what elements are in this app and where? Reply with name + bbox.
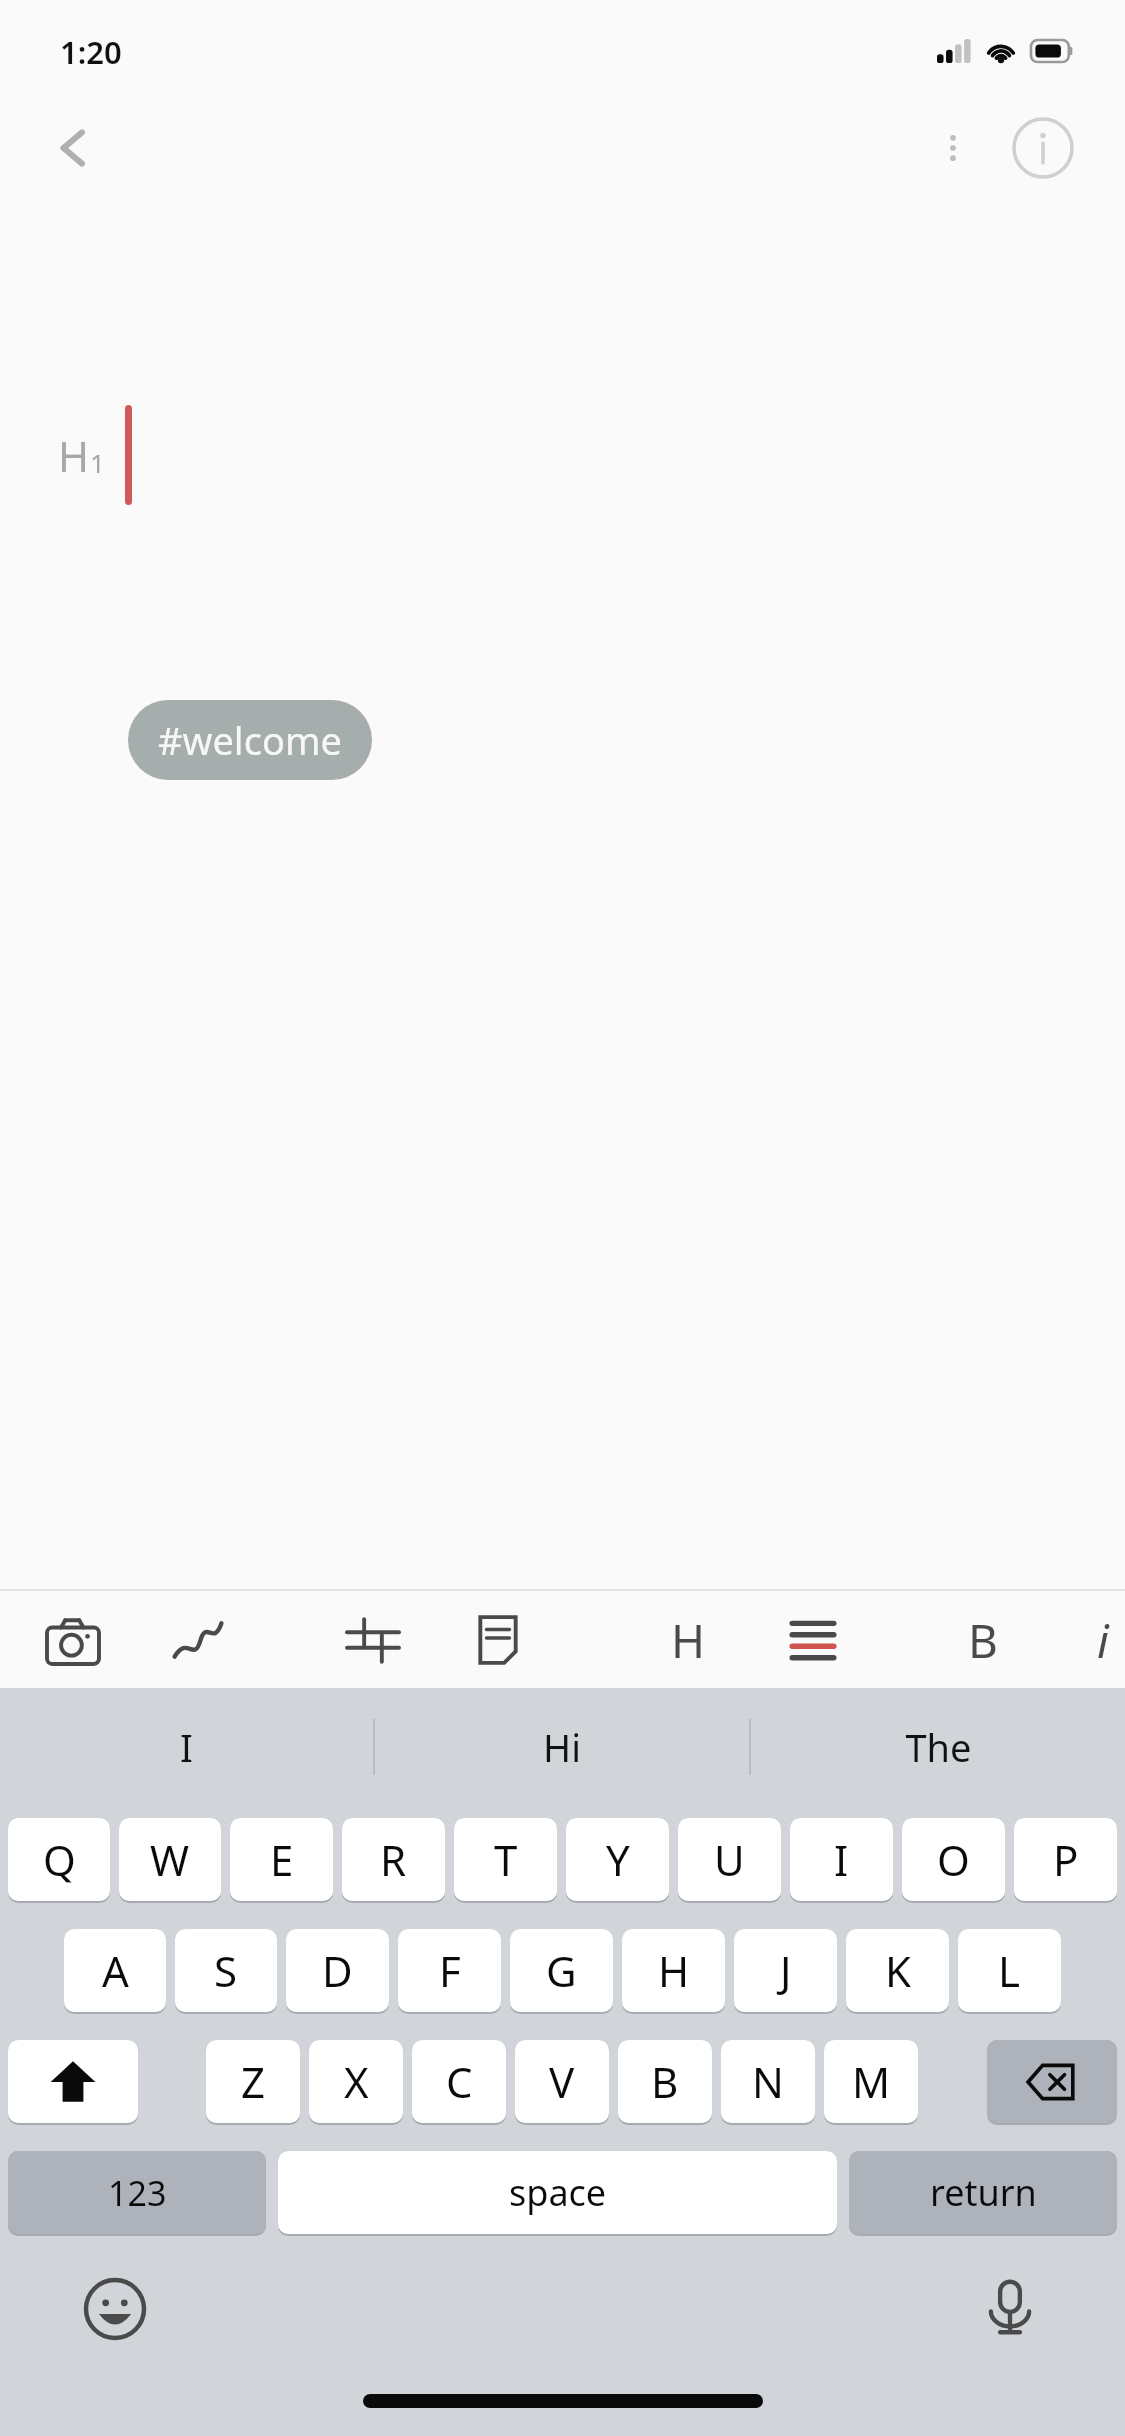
- staticText: X: [344, 2053, 369, 2110]
- button[interactable]: M: [824, 2040, 918, 2123]
- staticText: O: [937, 1831, 970, 1888]
- button[interactable]: Note: [455, 1597, 541, 1683]
- button[interactable]: Q: [8, 1818, 110, 1901]
- button[interactable]: L: [958, 1929, 1061, 2012]
- staticText: E: [270, 1831, 294, 1888]
- staticText: return: [930, 2168, 1037, 2217]
- staticText: R: [380, 1831, 407, 1888]
- staticText: M: [852, 2053, 891, 2110]
- button[interactable]: Settings: [330, 1597, 416, 1683]
- staticText: Hi: [543, 1721, 581, 1773]
- button[interactable]: Info: [997, 102, 1089, 194]
- button[interactable]: X: [309, 2040, 403, 2123]
- button[interactable]: Camera: [30, 1597, 116, 1683]
- button[interactable]: H: [645, 1597, 731, 1683]
- button[interactable]: i: [1080, 1597, 1125, 1683]
- button[interactable]: List: [770, 1597, 856, 1683]
- button[interactable]: Z: [206, 2040, 300, 2123]
- staticText: 1: [90, 445, 105, 480]
- button[interactable]: R: [342, 1818, 445, 1901]
- staticText: B: [651, 2053, 679, 2110]
- staticText: N: [752, 2053, 784, 2110]
- staticText: C: [446, 2053, 473, 2110]
- button[interactable]: return: [849, 2151, 1117, 2234]
- button[interactable]: I: [790, 1818, 893, 1901]
- button[interactable]: Back: [30, 100, 126, 196]
- button[interactable]: U: [678, 1818, 781, 1901]
- staticText: space: [509, 2168, 607, 2217]
- button[interactable]: I: [0, 1688, 373, 1806]
- button[interactable]: W: [119, 1818, 221, 1901]
- button[interactable]: N: [721, 2040, 815, 2123]
- button[interactable]: B: [618, 2040, 712, 2123]
- button[interactable]: space: [278, 2151, 837, 2234]
- button[interactable]: C: [412, 2040, 506, 2123]
- button[interactable]: S: [175, 1929, 277, 2012]
- staticText: G: [546, 1942, 577, 1999]
- button[interactable]: H: [622, 1929, 725, 2012]
- button[interactable]: F: [398, 1929, 501, 2012]
- staticText: J: [780, 1942, 792, 1999]
- staticText: H: [658, 1942, 690, 1999]
- button[interactable]: Draw: [155, 1597, 241, 1683]
- staticText: H: [58, 427, 90, 484]
- staticText: F: [439, 1942, 461, 1999]
- staticText: I: [180, 1721, 193, 1773]
- staticText: U: [714, 1831, 745, 1888]
- staticText: D: [322, 1942, 353, 1999]
- button[interactable]: More options: [909, 104, 997, 192]
- button[interactable]: Hi: [375, 1688, 749, 1806]
- button[interactable]: Shift: [8, 2040, 138, 2123]
- staticText: L: [998, 1942, 1021, 1999]
- button[interactable]: Y: [566, 1818, 669, 1901]
- staticText: #welcome: [158, 714, 342, 766]
- button[interactable]: O: [902, 1818, 1005, 1901]
- staticText: S: [214, 1942, 238, 1999]
- button[interactable]: Backspace: [987, 2040, 1117, 2123]
- staticText: A: [102, 1942, 129, 1999]
- button[interactable]: K: [846, 1929, 949, 2012]
- staticText: W: [150, 1831, 190, 1888]
- staticText: V: [549, 2053, 575, 2110]
- button[interactable]: A: [64, 1929, 166, 2012]
- staticText: K: [885, 1942, 911, 1999]
- staticText: Y: [606, 1831, 630, 1888]
- button[interactable]: E: [230, 1818, 333, 1901]
- button[interactable]: 123: [8, 2151, 266, 2234]
- button[interactable]: J: [734, 1929, 837, 2012]
- staticText: i: [1097, 1609, 1109, 1672]
- staticText: Z: [241, 2053, 266, 2110]
- staticText: The: [905, 1721, 972, 1773]
- button[interactable]: The: [751, 1688, 1125, 1806]
- staticText: H: [671, 1609, 706, 1672]
- button[interactable]: G: [510, 1929, 613, 2012]
- staticText: B: [968, 1609, 998, 1672]
- button[interactable]: B: [940, 1597, 1026, 1683]
- button[interactable]: Voice input: [965, 2264, 1055, 2354]
- button[interactable]: #welcome: [128, 700, 372, 780]
- button[interactable]: P: [1014, 1818, 1117, 1901]
- staticText: T: [494, 1831, 518, 1888]
- button[interactable]: T: [454, 1818, 557, 1901]
- button[interactable]: D: [286, 1929, 389, 2012]
- staticText: Q: [43, 1831, 76, 1888]
- staticText: 123: [108, 2170, 167, 2216]
- staticText: I: [834, 1831, 849, 1888]
- staticText: P: [1053, 1831, 1079, 1888]
- button[interactable]: V: [515, 2040, 609, 2123]
- button[interactable]: Emoji: [70, 2264, 160, 2354]
- staticText: 1:20: [60, 31, 122, 73]
